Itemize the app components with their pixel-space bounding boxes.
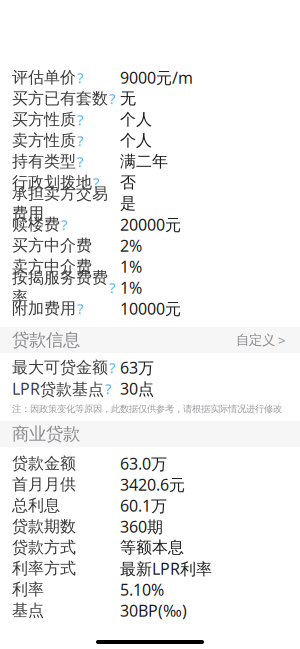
- staticText: ?: [77, 68, 83, 87]
- staticText: 注：因政策变化等原因，此数据仅供参考，请根据实际情况进行修改: [12, 403, 282, 415]
- staticText: 利率: [12, 580, 44, 599]
- staticText: 5.10%: [120, 579, 164, 600]
- staticText: ?: [109, 278, 115, 297]
- staticText: 否: [120, 173, 136, 192]
- staticText: ?: [109, 358, 115, 377]
- staticText: 等额本息: [120, 538, 184, 557]
- staticText: 贷款方式: [12, 538, 76, 557]
- staticText: 满二年: [120, 152, 168, 171]
- staticText: 贷款金额: [12, 454, 76, 473]
- staticText: ?: [105, 379, 111, 398]
- staticText: >: [278, 331, 286, 349]
- staticText: ?: [77, 110, 83, 129]
- staticText: 行政划拨地: [12, 173, 92, 192]
- staticText: 个人: [120, 110, 152, 129]
- staticText: 赎楼费: [12, 215, 60, 234]
- staticText: 总利息: [12, 496, 60, 515]
- staticText: 是: [120, 194, 136, 213]
- staticText: 贷款信息: [12, 329, 80, 351]
- staticText: 利率方式: [12, 559, 76, 578]
- staticText: 买方中介费: [12, 236, 92, 255]
- staticText: 10000元: [120, 298, 181, 319]
- staticText: 承担卖方交易费用: [12, 184, 108, 223]
- staticText: 63万: [120, 357, 154, 378]
- staticText: 按揭服务费费率: [12, 268, 108, 307]
- staticText: 卖方中介费: [12, 257, 92, 276]
- staticText: 自定义: [236, 332, 275, 348]
- staticText: 首月月供: [12, 475, 76, 494]
- staticText: 附加费用: [12, 299, 76, 318]
- staticText: ?: [109, 89, 115, 108]
- staticText: 360期: [120, 516, 163, 537]
- staticText: 商业贷款: [12, 423, 80, 445]
- staticText: ?: [77, 152, 83, 171]
- staticText: 个人: [120, 131, 152, 150]
- staticText: 最新LPR利率: [120, 558, 212, 579]
- staticText: 2%: [120, 235, 142, 256]
- staticText: 最大可贷金额: [12, 358, 108, 377]
- staticText: 买方性质: [12, 110, 76, 129]
- staticText: 基点: [12, 601, 44, 620]
- staticText: 30点: [120, 378, 154, 399]
- staticText: 1%: [120, 256, 142, 277]
- button[interactable]: 自定义: [234, 327, 288, 353]
- staticText: ?: [77, 299, 83, 318]
- staticText: ?: [77, 131, 83, 150]
- staticText: 持有类型: [12, 152, 76, 171]
- staticText: 9000元/m: [120, 67, 193, 88]
- staticText: 20000元: [120, 214, 181, 235]
- staticText: 无: [120, 89, 136, 108]
- staticText: 买方已有套数: [12, 89, 108, 108]
- staticText: 60.1万: [120, 495, 167, 516]
- staticText: 3420.6元: [120, 474, 185, 495]
- staticText: ?: [93, 173, 99, 192]
- staticText: 63.0万: [120, 453, 167, 474]
- staticText: ?: [61, 215, 67, 234]
- staticText: 30BP(‰): [120, 600, 187, 621]
- staticText: 卖方性质: [12, 131, 76, 150]
- staticText: LPR贷款基点: [12, 378, 104, 399]
- staticText: 评估单价: [12, 68, 76, 87]
- staticText: 贷款期数: [12, 517, 76, 536]
- staticText: 1%: [120, 277, 142, 298]
